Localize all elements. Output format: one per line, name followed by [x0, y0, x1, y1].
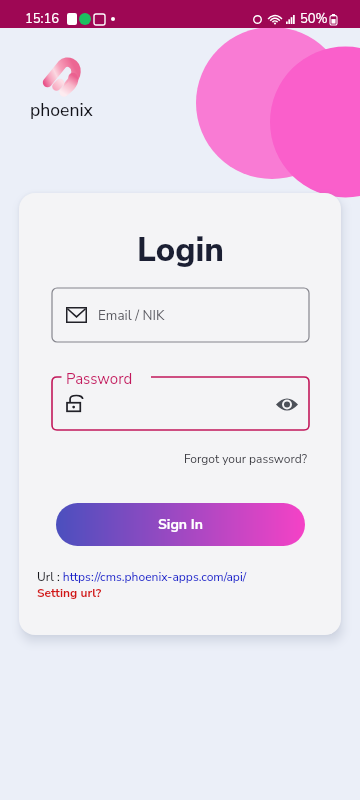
button[interactable]: Forgot your password? — [184, 451, 308, 467]
staticText: Url : https://cms.phoenix-apps.com/api/ — [37, 569, 247, 585]
staticText: Password — [66, 369, 133, 389]
button[interactable]: Setting url? — [37, 585, 102, 601]
staticText: Login — [137, 228, 224, 273]
staticText: 50% — [300, 10, 328, 28]
staticText: 15:16 — [25, 10, 60, 28]
button[interactable]: Email / NIK — [52, 288, 309, 342]
button[interactable]: Sign In — [56, 503, 305, 546]
staticText: Sign In — [158, 515, 203, 534]
staticText: Email / NIK — [98, 306, 165, 324]
staticText: phoenix — [30, 98, 93, 122]
button[interactable]: Show password — [270, 387, 304, 421]
